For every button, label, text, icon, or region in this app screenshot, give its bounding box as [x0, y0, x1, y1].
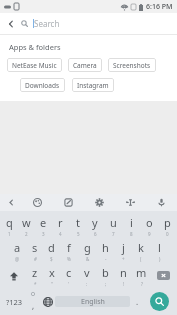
staticText: g [84, 240, 91, 255]
button[interactable]: Backspace [150, 263, 176, 288]
staticText: 2 [25, 231, 28, 237]
staticText: x [49, 265, 55, 280]
staticText: : [86, 281, 88, 287]
button[interactable]: Stickers [53, 194, 84, 211]
button[interactable]: j [114, 238, 132, 263]
button[interactable]: Downloads [20, 78, 65, 92]
staticText: q [6, 215, 13, 230]
button[interactable]: o [140, 213, 158, 238]
staticText: 5 [77, 231, 80, 237]
button[interactable]: Change language [40, 288, 55, 315]
button[interactable]: b [96, 263, 114, 288]
staticText: 8 [130, 231, 133, 237]
button[interactable]: x [43, 263, 60, 288]
staticText: Search [34, 18, 60, 29]
staticText: - [105, 256, 107, 262]
staticText: i [130, 215, 133, 230]
staticText: y [92, 215, 98, 230]
staticText: 4 [59, 231, 62, 237]
button[interactable]: g [78, 238, 96, 263]
button[interactable]: Themes [22, 194, 53, 211]
button[interactable]: Shift [1, 263, 26, 288]
staticText: 6 [94, 231, 97, 237]
button[interactable]: f [60, 238, 78, 263]
staticText: z [32, 265, 38, 280]
staticText: a [14, 240, 21, 255]
button[interactable]: Screenshots [108, 58, 156, 72]
staticText: m [136, 265, 147, 280]
button[interactable]: Camera [68, 58, 102, 72]
staticText: j [122, 240, 125, 255]
button[interactable]: Comma [26, 288, 40, 315]
staticText: ) [159, 256, 161, 262]
button[interactable]: Collapse toolbar [0, 194, 22, 211]
staticText: ; [105, 281, 107, 287]
staticText: ? [141, 281, 143, 287]
staticText: l [158, 240, 161, 255]
button[interactable]: y [86, 213, 104, 238]
button[interactable]: c [60, 263, 78, 288]
staticText: Instagram [77, 81, 109, 90]
staticText: h [102, 240, 109, 255]
staticText: 7 [112, 231, 115, 237]
button[interactable]: ?123 [2, 288, 26, 315]
staticText: b [102, 265, 109, 280]
staticText: 3 [42, 231, 45, 237]
staticText: # [34, 256, 37, 262]
staticText: o [146, 215, 153, 230]
staticText: , [32, 300, 35, 311]
staticText: . [136, 296, 139, 307]
staticText: n [120, 265, 127, 280]
button[interactable]: p [158, 213, 176, 238]
button[interactable]: s [26, 238, 43, 263]
staticText: 9 [148, 231, 151, 237]
button[interactable]: n [114, 263, 132, 288]
button[interactable]: Voice input [146, 194, 177, 211]
staticText: & [86, 256, 90, 262]
staticText: " [51, 281, 53, 287]
button[interactable]: t [69, 213, 86, 238]
button[interactable]: Back [0, 13, 21, 34]
button[interactable]: i [122, 213, 140, 238]
button[interactable]: u [104, 213, 122, 238]
button[interactable]: m [132, 263, 150, 288]
button[interactable]: l [150, 238, 168, 263]
button[interactable]: English [55, 296, 130, 307]
button[interactable]: h [96, 238, 114, 263]
staticText: t [76, 215, 80, 230]
staticText: c [66, 265, 72, 280]
staticText: s [32, 240, 38, 255]
staticText: p [164, 215, 171, 230]
button[interactable]: a [9, 238, 26, 263]
staticText: NetEase Music [12, 61, 57, 70]
staticText: $ [50, 256, 53, 262]
button[interactable]: Text editing [115, 194, 146, 211]
button[interactable]: Period [130, 288, 144, 315]
staticText: 6:16 PM [146, 2, 173, 12]
button[interactable]: Instagram [72, 78, 114, 92]
staticText: @ [15, 256, 20, 262]
staticText: Apps & folders [9, 42, 61, 52]
staticText: ?123 [6, 297, 23, 307]
staticText: k [138, 240, 144, 255]
button[interactable]: Search [144, 288, 175, 315]
staticText: Camera [73, 61, 97, 70]
staticText: ' [68, 281, 70, 287]
staticText: 0 [166, 231, 169, 237]
button[interactable]: r [52, 213, 69, 238]
button[interactable]: d [43, 238, 60, 263]
button[interactable]: e [35, 213, 52, 238]
staticText: v [84, 265, 90, 280]
button[interactable]: z [26, 263, 43, 288]
staticText: * [34, 281, 37, 287]
button[interactable]: q [1, 213, 18, 238]
staticText: w [22, 215, 31, 230]
button[interactable]: k [132, 238, 150, 263]
staticText: ! [123, 281, 125, 287]
button[interactable]: v [78, 263, 96, 288]
button[interactable]: Search [21, 13, 177, 34]
button[interactable]: NetEase Music [7, 58, 62, 72]
staticText: r [58, 215, 63, 230]
button[interactable]: Keyboard settings [84, 194, 115, 211]
button[interactable]: w [18, 213, 35, 238]
